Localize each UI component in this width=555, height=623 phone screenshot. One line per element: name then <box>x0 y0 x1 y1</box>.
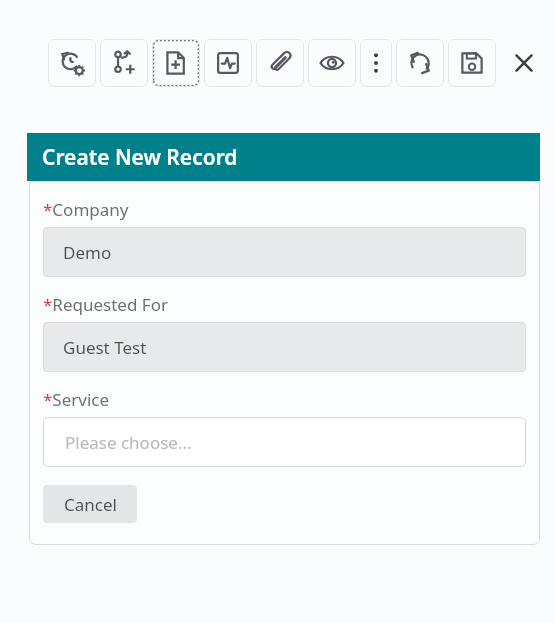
staticText: Please choose... <box>65 431 192 454</box>
button[interactable]: Add branch <box>100 39 148 87</box>
button[interactable]: Close <box>500 39 548 87</box>
staticText: Demo <box>63 241 112 264</box>
button[interactable]: Activity <box>204 39 252 87</box>
button[interactable]: More options <box>360 39 392 87</box>
button[interactable]: Attachment <box>256 39 304 87</box>
staticText: Cancel <box>64 493 117 516</box>
button[interactable]: Refresh <box>396 39 444 87</box>
button[interactable]: History settings <box>48 39 96 87</box>
button[interactable]: Guest Test <box>43 322 526 372</box>
button[interactable]: Save <box>448 39 496 87</box>
staticText: *Service <box>43 388 110 411</box>
button[interactable]: Preview <box>308 39 356 87</box>
button[interactable]: Demo <box>43 227 526 277</box>
button[interactable]: Cancel <box>43 485 137 523</box>
staticText: Create New Record <box>42 143 238 172</box>
button[interactable]: New record <box>152 39 200 87</box>
staticText: *Requested For <box>43 293 168 316</box>
staticText: Guest Test <box>63 336 147 359</box>
staticText: *Company <box>43 198 129 221</box>
button[interactable]: Please choose... <box>43 417 526 467</box>
